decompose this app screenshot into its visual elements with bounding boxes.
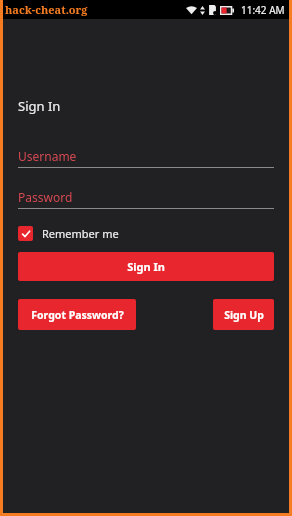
staticText: Sign In	[18, 97, 61, 115]
button[interactable]: Sign In	[18, 252, 274, 281]
staticText: hack-cheat.org	[5, 2, 88, 17]
staticText: Forgot Password?	[31, 308, 124, 322]
button[interactable]: Username	[18, 148, 274, 168]
staticText: Sign In	[127, 259, 165, 274]
staticText: 11:42 AM	[241, 3, 285, 17]
staticText: Password	[18, 189, 73, 205]
button[interactable]: Sign Up	[213, 299, 274, 330]
staticText: Remember me	[42, 226, 119, 241]
staticText: Username	[18, 148, 77, 164]
staticText: Sign Up	[224, 308, 264, 322]
button[interactable]: Password	[18, 189, 274, 209]
button[interactable]: Forgot Password?	[18, 299, 136, 330]
button[interactable]: Remember me	[18, 226, 119, 241]
